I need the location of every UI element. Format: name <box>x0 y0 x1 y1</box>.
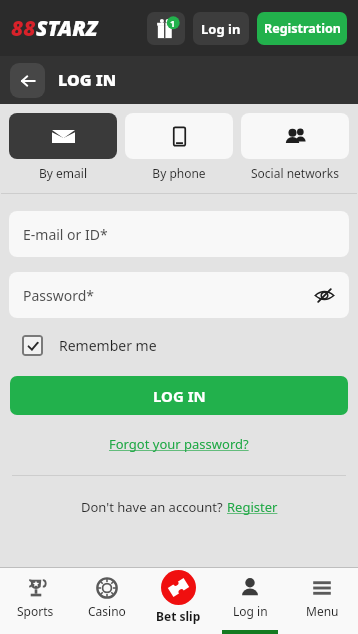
button[interactable]: Forgot your password? <box>109 435 249 453</box>
staticText: Menu <box>306 603 339 619</box>
button[interactable]: Registration <box>257 12 347 45</box>
staticText: 88 <box>11 14 36 43</box>
button[interactable]: Bet slip <box>142 568 214 634</box>
staticText: Casino <box>88 603 126 619</box>
button[interactable]: Casino <box>71 568 142 634</box>
staticText: Password* <box>23 286 95 305</box>
button[interactable]: Back <box>10 63 45 98</box>
button[interactable]: 88 <box>11 14 98 43</box>
staticText: 1 <box>170 17 176 29</box>
button[interactable]: LOG IN <box>10 376 348 415</box>
button[interactable]: Bonuses <box>147 12 185 45</box>
staticText: LOG IN <box>58 69 117 91</box>
button[interactable]: E-mail or ID* <box>9 211 349 257</box>
staticText: By phone <box>152 165 206 181</box>
button[interactable]: Show password <box>311 282 337 308</box>
staticText: Sports <box>17 603 54 619</box>
staticText: Registration <box>264 20 341 37</box>
staticText: Log in <box>201 20 241 38</box>
button[interactable]: Sports <box>0 568 71 634</box>
staticText: Social networks <box>251 165 339 181</box>
staticText: E-mail or ID* <box>23 225 108 244</box>
staticText: Log in <box>233 603 268 619</box>
button[interactable]: Menu <box>286 568 358 634</box>
staticText: Don't have an account? <box>81 498 227 516</box>
button[interactable]: Social networks <box>241 113 349 181</box>
button[interactable]: By email <box>9 113 117 181</box>
button[interactable]: Log in <box>193 12 249 45</box>
staticText: Bet slip <box>156 608 201 624</box>
staticText: By email <box>39 165 87 181</box>
staticText: LOG IN <box>153 386 206 406</box>
button[interactable]: Remember me <box>22 335 358 356</box>
button[interactable]: Log in <box>214 568 286 634</box>
button[interactable]: Password* <box>9 272 349 318</box>
button[interactable]: By phone <box>125 113 233 181</box>
staticText: STARZ <box>36 14 98 43</box>
staticText: Remember me <box>59 336 157 355</box>
button[interactable]: Register <box>227 498 278 516</box>
